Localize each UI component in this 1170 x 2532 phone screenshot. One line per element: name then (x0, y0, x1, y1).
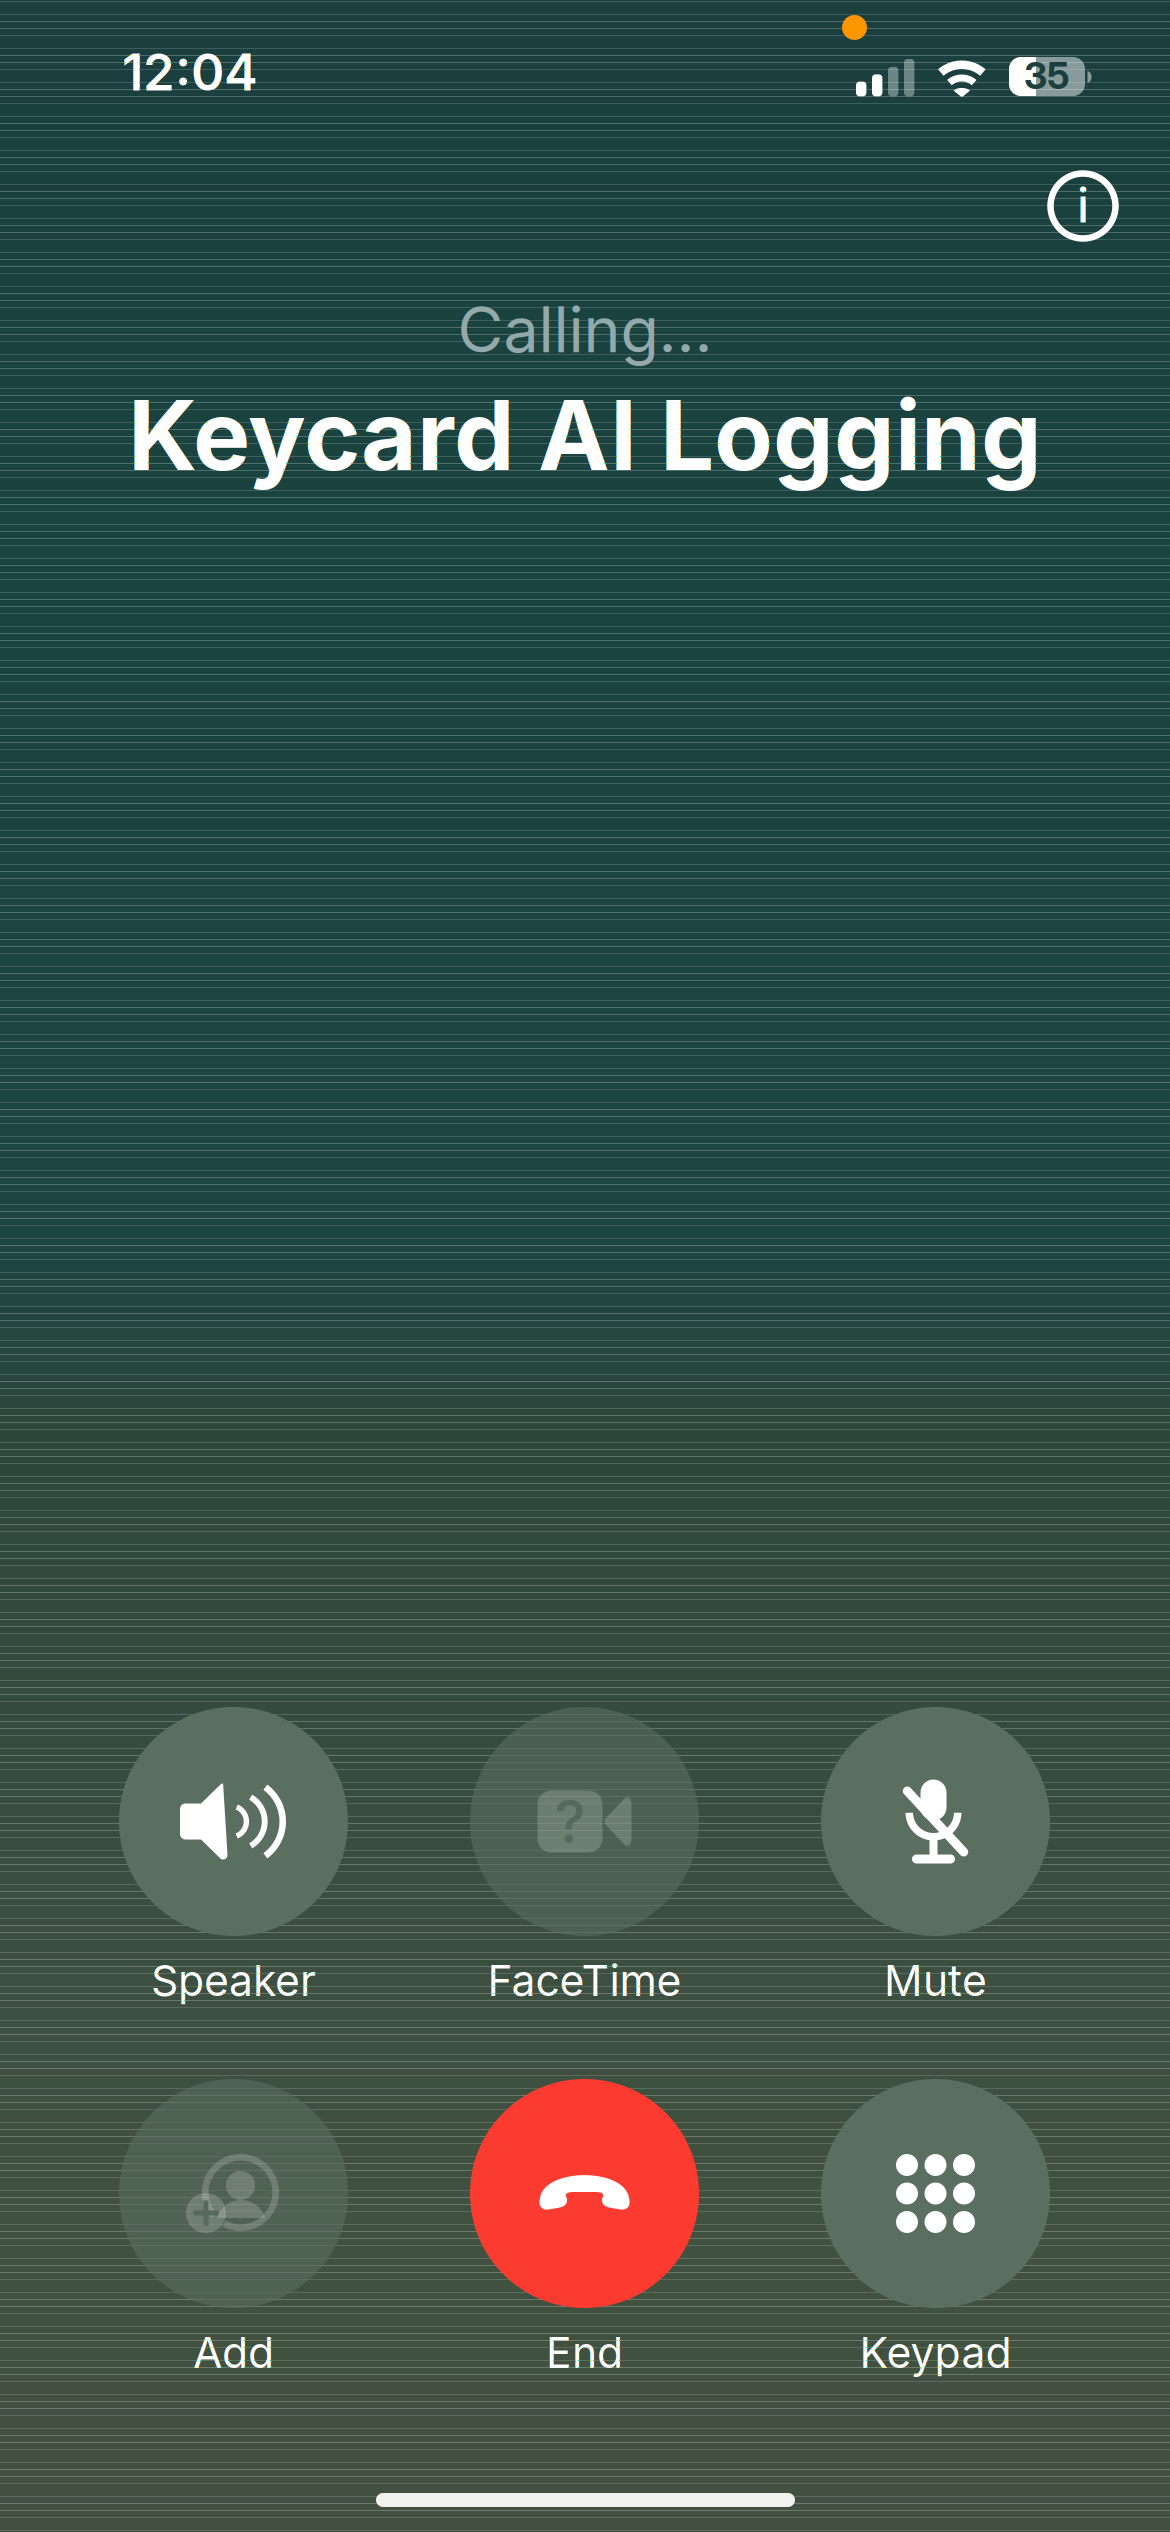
staticText: End (546, 2327, 623, 2378)
button[interactable]: Keypad (760, 2079, 1111, 2373)
staticText: 12:04 (122, 41, 258, 103)
staticText: i (1077, 176, 1089, 234)
button[interactable]: Add (58, 2079, 409, 2373)
button[interactable]: Call info (1017, 140, 1149, 272)
staticText: 35 (1024, 53, 1070, 98)
staticText: Calling... (457, 292, 712, 367)
button[interactable]: Mute (760, 1707, 1111, 2001)
staticText: ? (554, 1786, 585, 1857)
staticText: Keycard AI Logging (128, 377, 1042, 493)
staticText: Keypad (859, 2327, 1011, 2378)
staticText: Add (193, 2327, 274, 2378)
staticText: FaceTime (487, 1955, 681, 2006)
button[interactable]: Speaker (58, 1707, 409, 2001)
button[interactable]: End (409, 2079, 760, 2373)
staticText: Mute (884, 1955, 987, 2006)
button[interactable]: ? (409, 1707, 760, 2001)
staticText: Speaker (151, 1955, 316, 2006)
